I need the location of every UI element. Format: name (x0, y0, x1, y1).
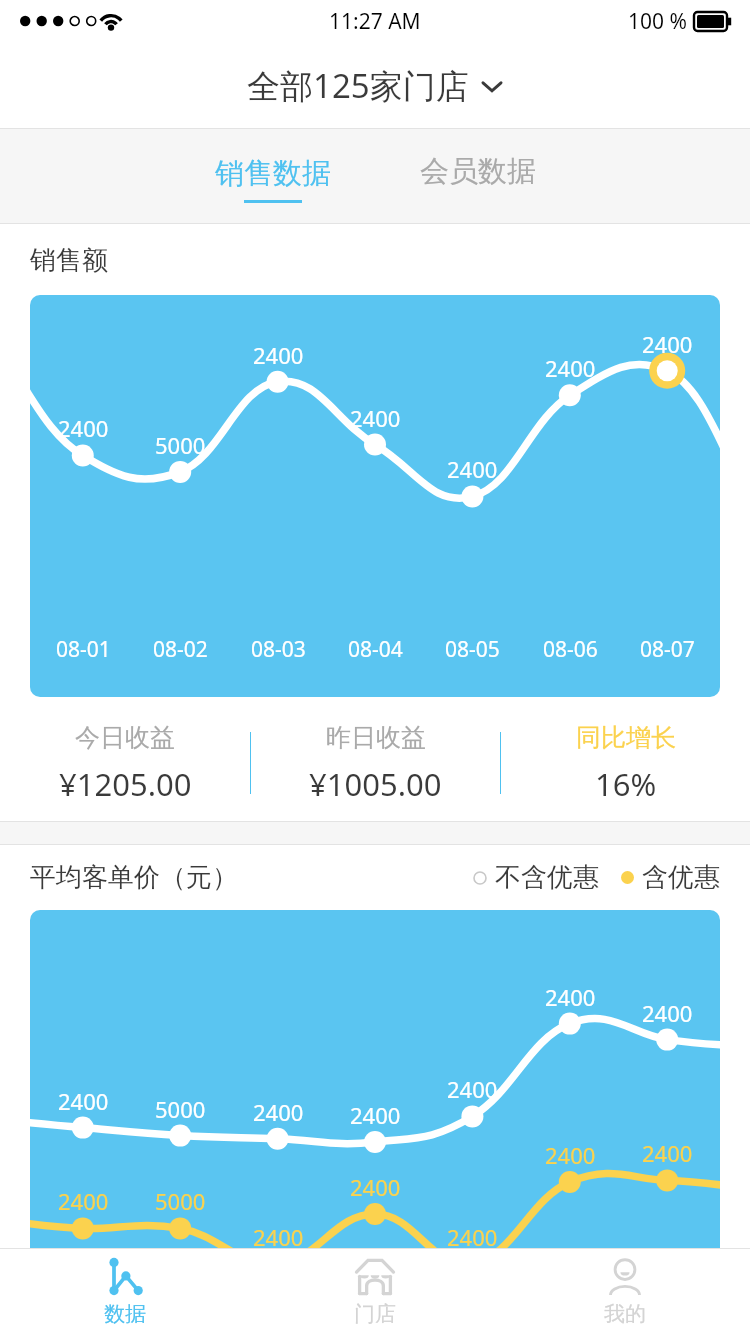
staticText: 2400 (642, 998, 693, 1028)
button[interactable]: 不含优惠 (473, 861, 599, 894)
staticText: 含优惠 (642, 861, 720, 894)
staticText: ¥1205.00 (59, 763, 192, 805)
staticText: 2400 (58, 1086, 109, 1116)
staticText: 08-01 (56, 635, 111, 664)
staticText: 5000 (155, 430, 206, 460)
staticText: 2400 (642, 1138, 693, 1168)
staticText: ¥1005.00 (309, 763, 442, 805)
staticText: 16% (595, 763, 657, 805)
staticText: 2400 (642, 329, 693, 359)
staticText: 2400 (447, 1222, 498, 1252)
staticText: 销售额 (30, 244, 108, 277)
staticText: 2400 (447, 1074, 498, 1104)
staticText: 5000 (155, 1186, 206, 1216)
button[interactable]: 全部125家门店 (0, 42, 750, 128)
staticText: 2400 (545, 982, 596, 1012)
staticText: 昨日收益 (326, 722, 426, 753)
staticText: 5000 (155, 1094, 206, 1124)
staticText: 08-07 (640, 635, 695, 664)
staticText: 我的 (604, 1301, 646, 1327)
staticText: 08-06 (543, 635, 598, 664)
staticText: 2400 (253, 1097, 304, 1127)
staticText: 2400 (350, 1172, 401, 1202)
button[interactable]: 门店 (250, 1249, 500, 1334)
staticText: 08-02 (153, 635, 208, 664)
staticText: 2400 (253, 340, 304, 370)
button[interactable]: 同比增长 (501, 705, 750, 821)
button[interactable]: 数据 (0, 1249, 250, 1334)
staticText: 08-05 (445, 635, 500, 664)
staticText: 全部125家门店 (247, 63, 469, 108)
staticText: 2400 (447, 454, 498, 484)
staticText: 08-04 (348, 635, 403, 664)
button[interactable]: 含优惠 (621, 861, 720, 894)
button[interactable]: 昨日收益 (251, 705, 500, 821)
staticText: 2400 (545, 353, 596, 383)
staticText: 2400 (350, 1100, 401, 1130)
staticText: 2400 (58, 1186, 109, 1216)
staticText: 同比增长 (576, 722, 676, 753)
staticText: 数据 (104, 1301, 146, 1327)
staticText: 08-03 (251, 635, 306, 664)
staticText: 2400 (58, 413, 109, 443)
button[interactable]: 会员数据 (375, 128, 580, 224)
staticText: 会员数据 (420, 153, 536, 190)
staticText: 门店 (354, 1301, 396, 1327)
staticText: 11:27 AM (329, 7, 421, 36)
staticText: 销售数据 (215, 155, 331, 192)
staticText: 2400 (350, 403, 401, 433)
button[interactable]: 销售数据 (170, 128, 375, 224)
staticText: 不含优惠 (495, 861, 599, 894)
button[interactable]: 我的 (500, 1249, 750, 1334)
button[interactable]: 今日收益 (0, 705, 250, 821)
staticText: 2400 (253, 1222, 304, 1252)
staticText: 平均客单价（元） (30, 861, 238, 894)
staticText: 今日收益 (75, 722, 175, 753)
staticText: 2400 (545, 1140, 596, 1170)
staticText: 100 % (628, 7, 687, 36)
